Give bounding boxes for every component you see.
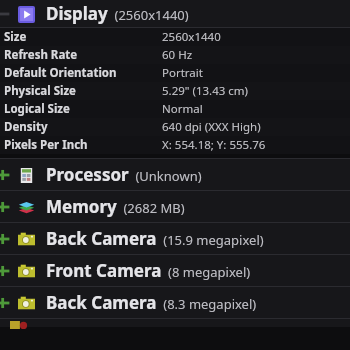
staticText: Processor (Unknown): [46, 163, 202, 186]
staticText: Size: [4, 29, 27, 45]
staticText: Memory (2682 MB): [46, 195, 185, 218]
staticText: Portrait: [162, 65, 203, 81]
other: Collapse: [0, 0, 16, 27]
staticText: Refresh Rate: [4, 47, 78, 63]
staticText: Front Camera (8 megapixel): [46, 259, 251, 282]
staticText: Normal: [162, 101, 203, 117]
button[interactable]: Logical Size: [0, 100, 350, 118]
button[interactable]: Default Orientation: [0, 64, 350, 82]
button[interactable]: Pixels Per Inch: [0, 136, 350, 154]
staticText: 640 dpi (XXX High): [162, 119, 261, 135]
button[interactable]: Collapse: [0, 0, 350, 27]
other: Expand: [0, 287, 16, 318]
button[interactable]: Refresh Rate: [0, 46, 350, 64]
staticText: 60 Hz: [162, 47, 193, 63]
staticText: 5.29" (13.43 cm): [162, 83, 249, 99]
button[interactable]: Expand: [0, 159, 350, 190]
button[interactable]: Expand: [0, 255, 350, 286]
staticText: 2560x1440: [162, 29, 221, 45]
button[interactable]: Expand: [0, 287, 350, 318]
staticText: Back Camera (8.3 megapixel): [46, 291, 257, 314]
staticText: Default Orientation: [4, 65, 117, 81]
staticText: Display (2560x1440): [46, 2, 189, 25]
staticText: X: 554.18; Y: 555.76: [162, 137, 266, 153]
button[interactable]: Physical Size: [0, 82, 350, 100]
other: Expand: [0, 191, 16, 222]
staticText: Density: [4, 119, 48, 135]
other: Expand: [0, 159, 16, 190]
button[interactable]: Expand: [0, 223, 350, 254]
staticText: Back Camera (15.9 megapixel): [46, 227, 264, 250]
other: Expand: [0, 255, 16, 286]
button[interactable]: Expand: [0, 191, 350, 222]
button[interactable]: Size: [0, 28, 350, 46]
staticText: Pixels Per Inch: [4, 137, 88, 153]
button[interactable]: [0, 319, 350, 327]
other: Expand: [0, 223, 16, 254]
staticText: Physical Size: [4, 83, 76, 99]
staticText: Logical Size: [4, 101, 70, 117]
button[interactable]: Density: [0, 118, 350, 136]
